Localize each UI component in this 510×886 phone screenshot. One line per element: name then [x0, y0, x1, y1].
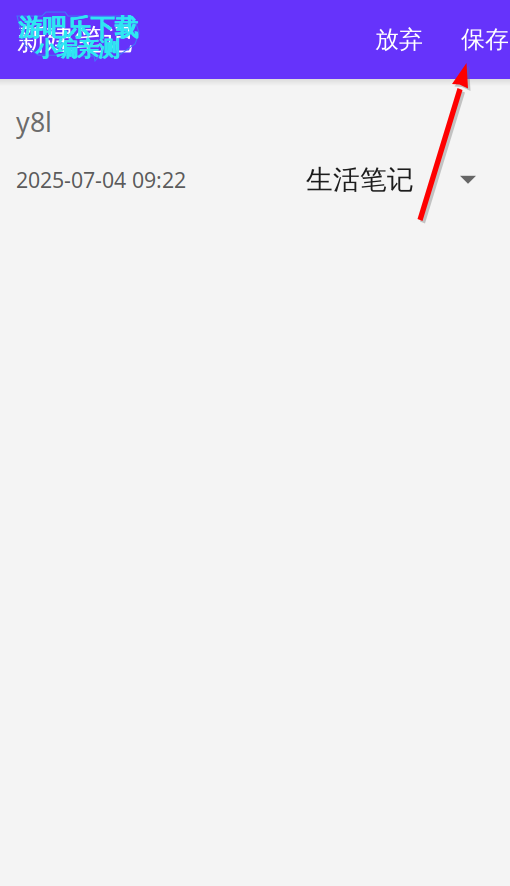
- staticText: 保存: [461, 25, 509, 54]
- staticText: 小编亲测: [36, 36, 120, 62]
- button[interactable]: 生活笔记: [306, 157, 510, 202]
- staticText: 生活笔记: [306, 163, 414, 196]
- staticText: 放弃: [375, 25, 423, 54]
- button[interactable]: 保存: [433, 13, 510, 66]
- staticText: 小编亲测: [35, 36, 119, 62]
- staticText: 新建笔记: [17, 21, 133, 57]
- button[interactable]: 放弃: [365, 13, 433, 66]
- staticText: y8l: [16, 104, 52, 139]
- staticText: 游吧乐下载: [18, 13, 138, 42]
- staticText: 2025-07-04 09:22: [16, 166, 186, 194]
- staticText: 游吧乐下载: [19, 13, 139, 42]
